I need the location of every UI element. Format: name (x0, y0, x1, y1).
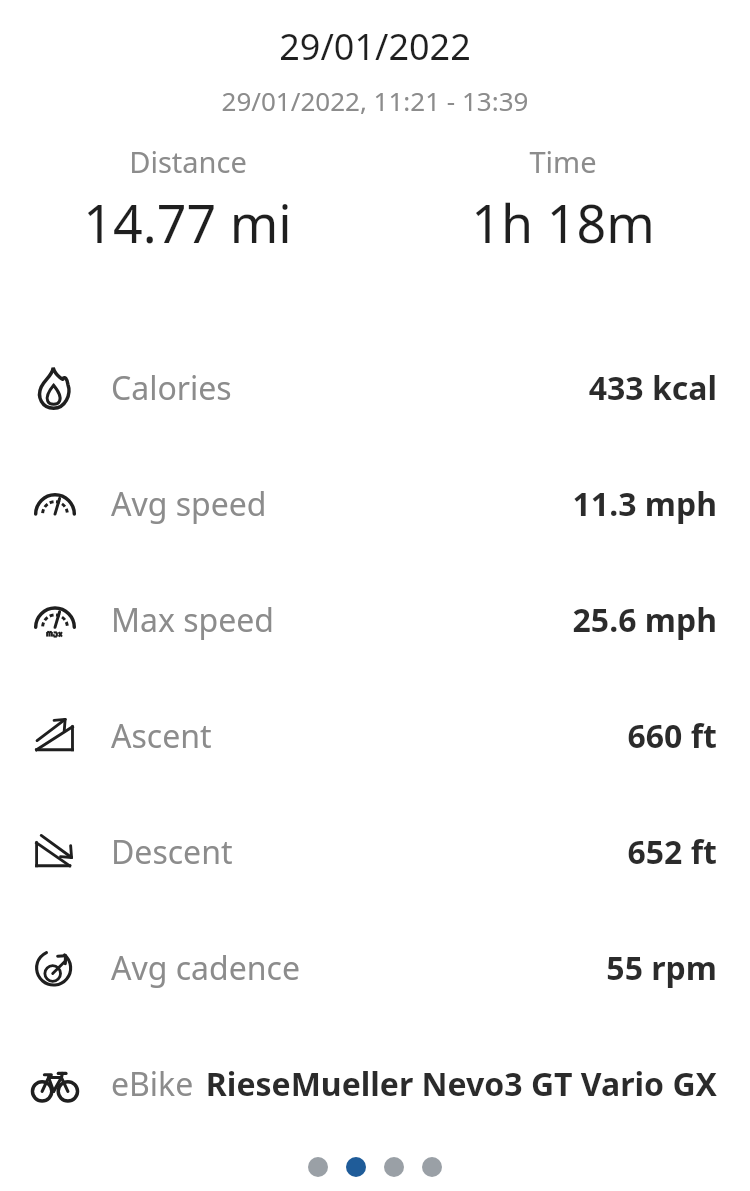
other: Descent (32, 829, 78, 875)
button[interactable]: Max speed (0, 562, 750, 678)
other: eBike (32, 1061, 78, 1107)
staticText: Descent (111, 830, 233, 874)
staticText: 660 ft (627, 714, 717, 758)
other: Avg cadence (32, 945, 78, 991)
button[interactable] (346, 1157, 366, 1177)
button[interactable] (308, 1157, 328, 1177)
button[interactable]: Avg speed (0, 446, 750, 562)
button[interactable]: Avg cadence (0, 910, 750, 1026)
staticText: Ascent (111, 714, 212, 758)
staticText: 29/01/2022, 11:21 - 13:39 (0, 83, 750, 118)
button[interactable]: Calories (0, 330, 750, 446)
staticText: 433 kcal (588, 366, 717, 410)
staticText: Distance (129, 142, 247, 181)
staticText: 55 rpm (606, 946, 717, 990)
button[interactable]: Time (375, 142, 750, 258)
button[interactable] (384, 1157, 404, 1177)
other: Avg speed (32, 481, 78, 527)
staticText: 25.6 mph (572, 598, 717, 642)
staticText: 652 ft (627, 830, 717, 874)
staticText: Time (529, 142, 597, 181)
button[interactable]: Ascent (0, 678, 750, 794)
button[interactable]: Descent (0, 794, 750, 910)
other: Ascent (32, 713, 78, 759)
staticText: 14.77 mi (83, 187, 292, 258)
staticText: Max speed (111, 598, 275, 642)
staticText: 29/01/2022 (0, 22, 750, 71)
staticText: RieseMueller Nevo3 GT Vario GX (205, 1062, 717, 1106)
staticText: Avg speed (111, 482, 267, 526)
staticText: Avg cadence (111, 946, 300, 990)
staticText: eBike (111, 1062, 194, 1106)
other: Max speed (32, 597, 78, 643)
staticText: Calories (111, 366, 232, 410)
button[interactable] (422, 1157, 442, 1177)
staticText: 11.3 mph (572, 482, 717, 526)
button[interactable]: Distance (0, 142, 375, 258)
staticText: 1h 18m (471, 187, 655, 258)
other: Calories (32, 365, 78, 411)
button[interactable]: eBike (0, 1026, 750, 1142)
